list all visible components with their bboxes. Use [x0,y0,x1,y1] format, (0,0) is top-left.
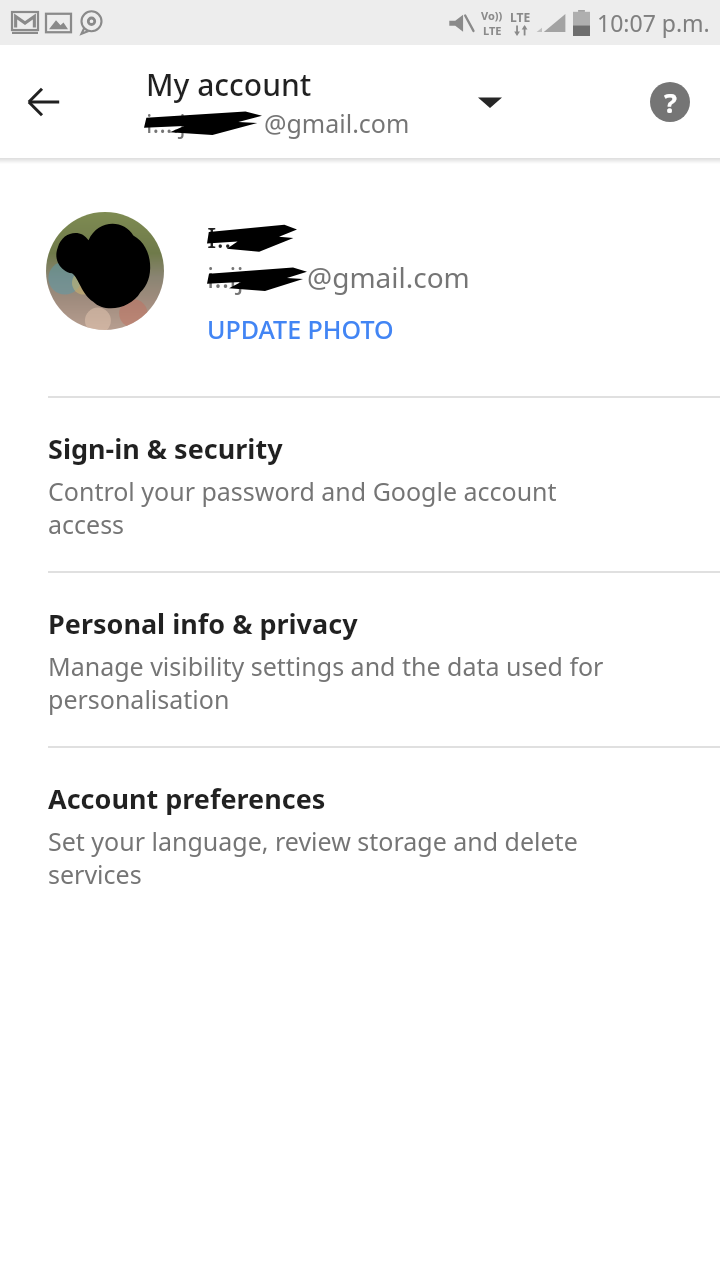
staticText: i....j.. [146,106,200,140]
staticText: @gmail.com [307,258,470,296]
staticText: Control your password and Google account… [48,474,636,541]
staticText: Vo)) [481,8,503,23]
staticText: I.. .... [207,218,269,256]
button[interactable]: Account preferences [0,748,720,921]
button[interactable]: Sign-in & security [0,398,720,571]
staticText: LTE [483,23,502,38]
button[interactable]: Help [634,66,706,138]
staticText: UPDATE PHOTO [207,312,394,346]
staticText: i..ij... [207,258,267,296]
staticText: Account preferences [48,780,326,817]
button[interactable]: UPDATE PHOTO [207,312,394,346]
staticText: Sign-in & security [48,430,283,467]
button[interactable]: Back [8,66,80,138]
staticText: ? [664,84,677,121]
staticText: @gmail.com [264,106,410,140]
staticText: Set your language, review storage and de… [48,824,636,891]
staticText: 10:07 p.m. [597,7,710,38]
button[interactable]: Personal info & privacy [0,573,720,746]
button[interactable]: Switch account [452,64,528,140]
staticText: LTE [510,9,531,25]
staticText: Personal info & privacy [48,605,358,642]
button[interactable]: Profile photo [46,212,164,330]
staticText: Manage visibility settings and the data … [48,649,636,716]
staticText: My account [146,64,312,105]
